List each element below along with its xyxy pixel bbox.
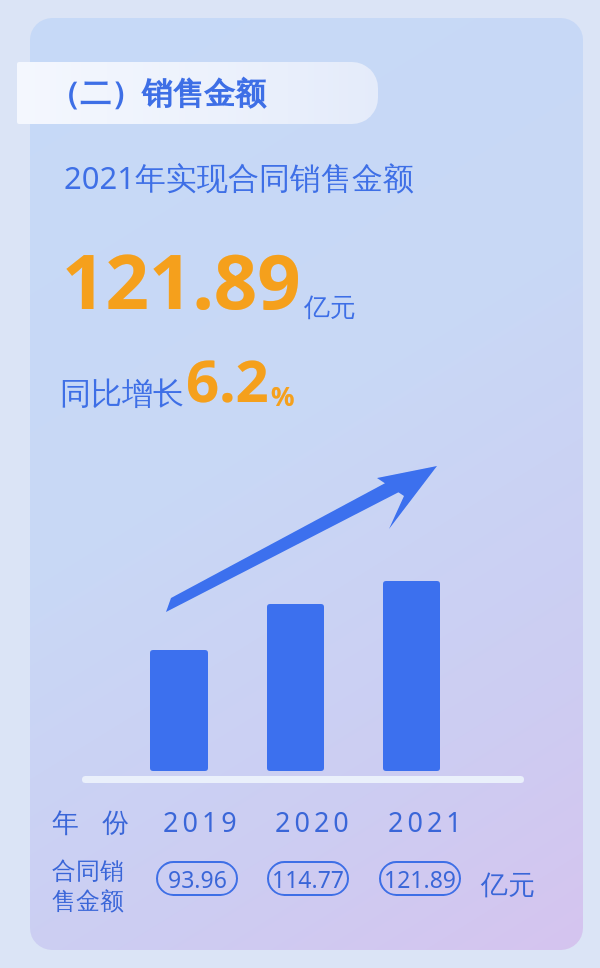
- staticText: 93.96: [168, 863, 227, 894]
- staticText: （二）销售金额: [49, 74, 266, 113]
- staticText: 2021年实现合同销售金额: [64, 156, 414, 198]
- staticText: 售金额: [52, 886, 124, 916]
- staticText: 2021: [388, 803, 466, 840]
- staticText: 年 份: [52, 803, 133, 840]
- button[interactable]: 121.89: [380, 862, 460, 895]
- staticText: 同比增长: [60, 374, 184, 413]
- staticText: 121.89: [384, 863, 456, 894]
- staticText: 合同销: [52, 856, 124, 886]
- button[interactable]: （二）销售金额: [17, 62, 378, 124]
- staticText: 2020: [275, 803, 353, 840]
- staticText: 亿元: [481, 868, 535, 902]
- staticText: 2019: [163, 803, 241, 840]
- button[interactable]: 93.96: [157, 862, 237, 895]
- staticText: %: [271, 378, 295, 413]
- staticText: 亿元: [304, 291, 356, 324]
- staticText: 114.77: [272, 863, 344, 894]
- staticText: 121.89: [62, 228, 301, 332]
- staticText: 6.2: [186, 340, 269, 419]
- button[interactable]: 114.77: [268, 862, 348, 895]
